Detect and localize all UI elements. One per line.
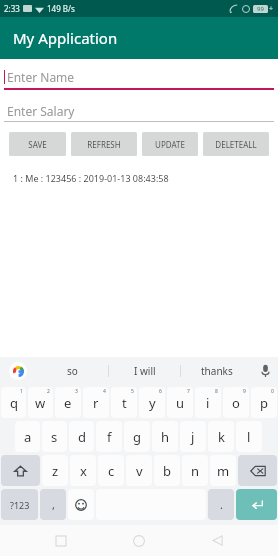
staticText: so — [67, 364, 78, 378]
button[interactable]: z — [42, 455, 68, 486]
button[interactable]: v — [126, 455, 152, 486]
staticText: m — [217, 462, 230, 480]
staticText: 0 — [271, 388, 274, 395]
staticText: j — [191, 428, 195, 446]
staticText: g — [133, 428, 141, 446]
staticText: k — [218, 428, 225, 446]
button[interactable]: b — [154, 455, 180, 486]
button[interactable]: j — [180, 421, 206, 452]
button[interactable]: Enter — [236, 489, 277, 520]
button[interactable]: w — [28, 387, 53, 418]
staticText: 7 — [187, 388, 190, 395]
staticText: a — [24, 428, 32, 446]
button[interactable]: Voice input — [252, 357, 278, 384]
staticText: t — [122, 394, 127, 412]
staticText: 8 — [215, 388, 218, 395]
button[interactable]: Backspace — [238, 455, 277, 486]
staticText: q — [10, 394, 18, 412]
staticText: ?123 — [10, 499, 30, 511]
staticText: 1 — [20, 388, 23, 395]
staticText: b — [163, 462, 171, 480]
button[interactable]: d — [69, 421, 94, 452]
staticText: u — [176, 394, 185, 412]
button[interactable]: s — [42, 421, 67, 452]
button[interactable]: m — [210, 455, 236, 486]
staticText: r — [93, 394, 99, 412]
staticText: 2:33 — [4, 3, 20, 14]
button[interactable]: n — [182, 455, 208, 486]
button[interactable]: Google — [0, 357, 36, 384]
staticText: c — [108, 462, 115, 480]
button[interactable]: x — [70, 455, 96, 486]
button[interactable]: Home — [122, 525, 156, 556]
staticText: 2 — [47, 388, 50, 395]
button[interactable]: , — [40, 489, 66, 520]
staticText: Enter Salary — [7, 103, 75, 119]
staticText: thanks — [201, 364, 233, 378]
staticText: 1 : Me : 123456 : 2019-01-13 08:43:58 — [13, 172, 169, 184]
staticText: I will — [134, 364, 156, 378]
staticText: 6 — [159, 388, 162, 395]
staticText: p — [260, 394, 268, 412]
button[interactable]: p — [251, 387, 277, 418]
button[interactable]: h — [152, 421, 178, 452]
button[interactable]: UPDATE — [142, 132, 198, 156]
staticText: 99 — [257, 5, 264, 13]
button[interactable]: REFRESH — [71, 132, 137, 156]
button[interactable]: q — [1, 387, 26, 418]
staticText: + — [269, 4, 274, 14]
staticText: . — [220, 497, 223, 512]
staticText: , — [52, 497, 55, 512]
staticText: y — [149, 394, 156, 412]
staticText: z — [52, 462, 59, 480]
staticText: 9 — [243, 388, 246, 395]
button[interactable]: t — [111, 387, 137, 418]
staticText: f — [107, 428, 112, 446]
button[interactable]: l — [236, 421, 262, 452]
button[interactable]: g — [124, 421, 150, 452]
button[interactable]: Emoji — [68, 489, 94, 520]
staticText: n — [191, 462, 200, 480]
button[interactable]: so — [36, 357, 108, 384]
staticText: Enter Name — [7, 69, 75, 85]
button[interactable]: u — [167, 387, 193, 418]
staticText: l — [247, 428, 251, 446]
staticText: d — [78, 428, 86, 446]
staticText: DELETEALL — [215, 139, 257, 150]
button[interactable]: DELETEALL — [203, 132, 269, 156]
staticText: h — [161, 428, 170, 446]
button[interactable]: . — [208, 489, 234, 520]
staticText: x — [80, 462, 87, 480]
staticText: 4 — [103, 388, 106, 395]
staticText: e — [64, 394, 72, 412]
button[interactable]: ?123 — [1, 489, 38, 520]
button[interactable]: o — [223, 387, 249, 418]
staticText: UPDATE — [155, 139, 185, 150]
staticText: REFRESH — [87, 139, 121, 150]
staticText: 5 — [131, 388, 134, 395]
staticText: 3 — [75, 388, 78, 395]
button[interactable]: y — [139, 387, 165, 418]
button[interactable]: I will — [109, 357, 180, 384]
button[interactable]: a — [15, 421, 40, 452]
button[interactable]: e — [55, 387, 81, 418]
staticText: My Application — [13, 28, 118, 48]
staticText: s — [51, 428, 58, 446]
staticText: v — [136, 462, 143, 480]
staticText: w — [35, 394, 46, 412]
button[interactable]: Recents — [44, 525, 78, 556]
button[interactable]: k — [208, 421, 234, 452]
button[interactable]: Back — [200, 525, 234, 556]
staticText: 149 B/s — [47, 3, 75, 14]
button[interactable]: c — [98, 455, 124, 486]
button[interactable]: Shift — [1, 455, 40, 486]
button[interactable]: f — [96, 421, 122, 452]
button[interactable]: i — [195, 387, 221, 418]
button[interactable]: thanks — [181, 357, 252, 384]
staticText: o — [232, 394, 240, 412]
button[interactable]: SAVE — [9, 132, 66, 156]
button[interactable]: r — [83, 387, 109, 418]
staticText: SAVE — [28, 139, 47, 150]
staticText: i — [206, 394, 210, 412]
